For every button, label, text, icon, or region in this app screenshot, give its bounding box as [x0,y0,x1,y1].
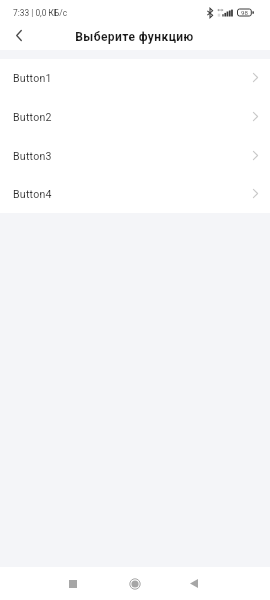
button[interactable]: Button4 [0,176,270,213]
button[interactable]: Back [0,21,37,49]
button[interactable]: Button1 [0,59,270,98]
button[interactable]: Recent apps [50,567,96,600]
staticText: Выберите функцию [75,30,194,44]
staticText: 98 [241,9,248,16]
button[interactable]: Back [174,567,220,600]
button[interactable]: Button3 [0,137,270,176]
button[interactable]: Button2 [0,98,270,137]
staticText: Button1 [13,72,52,84]
staticText: 7:33 | 0,0 КБ/с [13,8,68,18]
staticText: Button3 [13,150,52,162]
button[interactable]: Home [112,567,158,600]
staticText: Button2 [13,111,52,123]
staticText: Button4 [13,188,52,200]
